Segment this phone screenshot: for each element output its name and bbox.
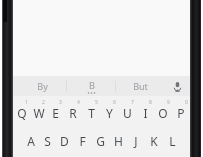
staticText: 5: [95, 99, 98, 106]
button[interactable]: L: [163, 126, 181, 156]
staticText: J: [134, 133, 138, 149]
staticText: S: [44, 133, 51, 149]
staticText: 3: [59, 99, 62, 106]
button[interactable]: A: [22, 126, 39, 156]
staticText: 8: [149, 99, 152, 106]
button[interactable]: R: [64, 96, 82, 126]
staticText: G: [96, 133, 105, 149]
staticText: Y: [106, 105, 113, 121]
staticText: H: [114, 133, 123, 149]
staticText: K: [150, 133, 158, 149]
staticText: F: [79, 133, 86, 149]
staticText: L: [169, 133, 176, 149]
button[interactable]: E: [47, 96, 64, 126]
button[interactable]: By: [19, 76, 66, 96]
staticText: T: [88, 105, 95, 121]
staticText: U: [123, 105, 132, 121]
staticText: 7: [131, 99, 134, 106]
staticText: 6: [113, 99, 116, 106]
button[interactable]: B: [67, 76, 115, 96]
staticText: But: [133, 80, 148, 92]
staticText: By: [37, 80, 48, 92]
staticText: O: [158, 105, 168, 121]
button[interactable]: S: [39, 126, 56, 156]
staticText: 4: [77, 99, 80, 106]
staticText: E: [52, 105, 59, 121]
staticText: A: [27, 133, 35, 149]
staticText: B: [89, 79, 95, 91]
staticText: 1: [25, 99, 28, 106]
staticText: W: [33, 105, 45, 121]
button[interactable]: P: [172, 96, 190, 126]
staticText: 0: [185, 99, 188, 106]
button[interactable]: H: [109, 126, 127, 156]
button[interactable]: O: [154, 96, 172, 126]
button[interactable]: K: [145, 126, 163, 156]
button[interactable]: J: [127, 126, 145, 156]
button[interactable]: U: [118, 96, 136, 126]
button[interactable]: G: [91, 126, 109, 156]
staticText: R: [69, 105, 77, 121]
button[interactable]: D: [56, 126, 73, 156]
staticText: P: [177, 105, 185, 121]
staticText: 9: [167, 99, 170, 106]
staticText: 2: [42, 99, 45, 106]
button[interactable]: Y: [100, 96, 118, 126]
staticText: Q: [17, 105, 27, 121]
button[interactable]: F: [73, 126, 91, 156]
staticText: D: [60, 133, 69, 149]
button[interactable]: Voice input: [164, 76, 190, 96]
button[interactable]: T: [82, 96, 100, 126]
button[interactable]: I: [136, 96, 154, 126]
staticText: I: [143, 105, 148, 121]
button[interactable]: W: [30, 96, 47, 126]
button[interactable]: Q: [13, 96, 30, 126]
button[interactable]: But: [116, 76, 164, 96]
